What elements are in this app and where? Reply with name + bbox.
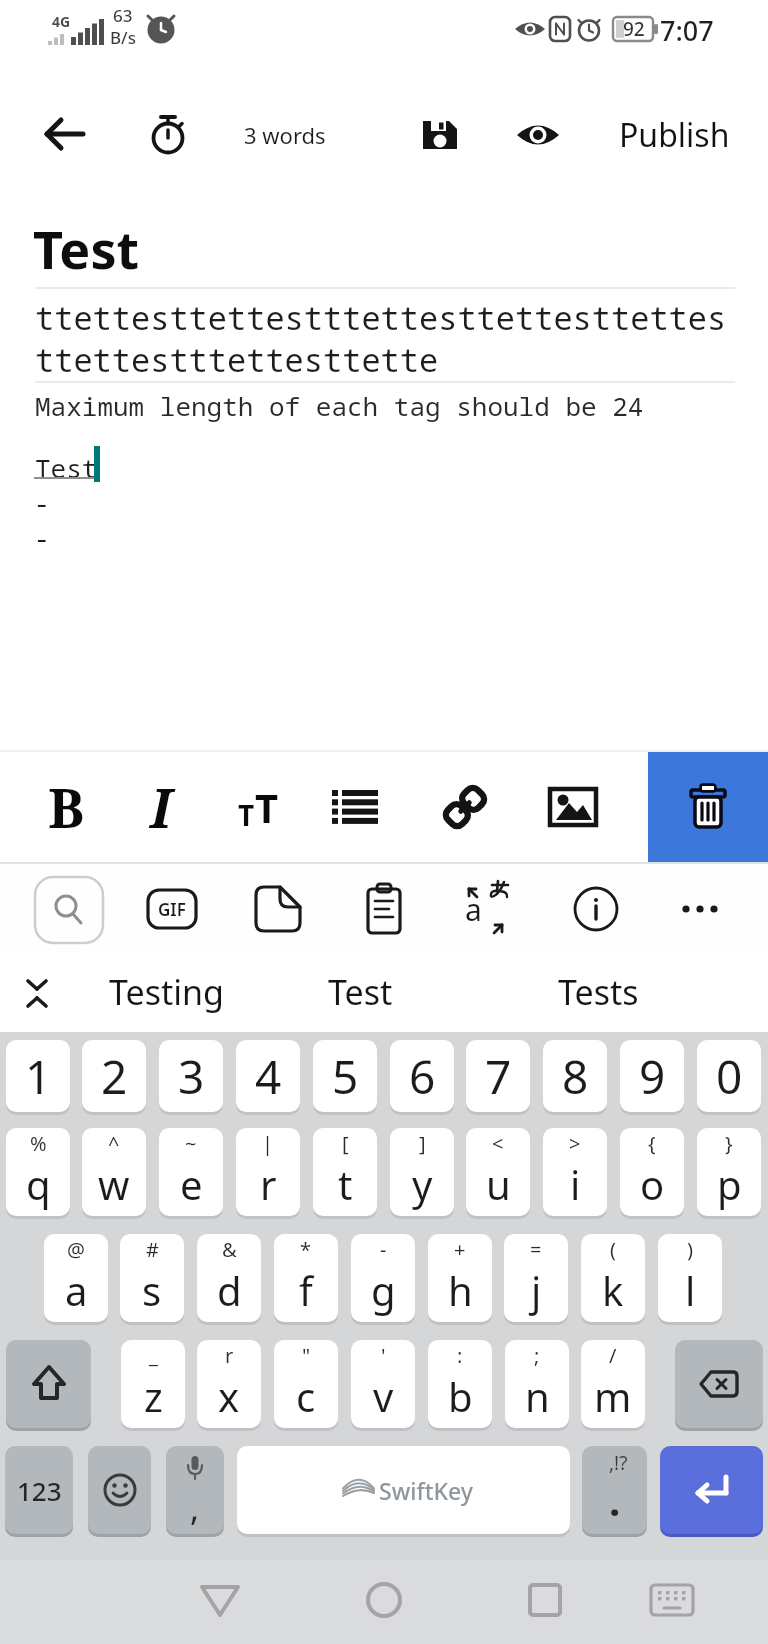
staticText: r (260, 1157, 277, 1211)
staticText: a (465, 889, 482, 930)
button[interactable]: - (351, 1234, 415, 1322)
button[interactable]: ~ (159, 1128, 223, 1216)
button[interactable]: _ (121, 1340, 185, 1428)
button[interactable] (648, 752, 768, 862)
button[interactable]: SwiftKey (237, 1446, 570, 1534)
staticText: 63 (113, 4, 133, 27)
staticText: Publish (619, 113, 730, 157)
button[interactable] (34, 876, 104, 944)
button[interactable]: ,!? (582, 1446, 647, 1534)
staticText: Testing (109, 969, 224, 1015)
button[interactable]: , (166, 1446, 224, 1534)
button[interactable] (88, 1446, 151, 1534)
button[interactable] (568, 880, 624, 938)
staticText: 9 (639, 1045, 666, 1108)
staticText: 92 (623, 16, 645, 42)
staticText: 7 (485, 1045, 512, 1108)
button[interactable]: Tests (528, 958, 668, 1026)
button[interactable]: + (428, 1234, 492, 1322)
button[interactable]: { (620, 1128, 684, 1216)
staticText: Test (328, 969, 393, 1015)
button[interactable]: * (274, 1234, 338, 1322)
button[interactable]: " (274, 1340, 338, 1428)
button[interactable]: Test (290, 958, 430, 1026)
button[interactable]: % (6, 1128, 70, 1216)
button[interactable] (315, 762, 395, 852)
staticText: * (300, 1236, 312, 1263)
button[interactable] (675, 1340, 763, 1428)
button[interactable]: I (121, 762, 201, 852)
button[interactable]: ) (658, 1234, 722, 1322)
button[interactable]: < (466, 1128, 530, 1216)
button[interactable]: = (504, 1234, 568, 1322)
button[interactable] (660, 1446, 763, 1534)
staticText: u (486, 1157, 511, 1211)
staticText: " (302, 1342, 311, 1369)
button[interactable]: # (120, 1234, 184, 1322)
button[interactable]: & (197, 1234, 261, 1322)
staticText: < (492, 1130, 504, 1157)
staticText: Test (33, 213, 140, 284)
button[interactable]: 123 (5, 1446, 73, 1534)
button[interactable]: [ (313, 1128, 377, 1216)
button[interactable]: 9 (620, 1040, 684, 1112)
button[interactable] (6, 1340, 91, 1428)
staticText: i (570, 1157, 581, 1211)
button[interactable]: Testing (86, 958, 246, 1026)
staticText: { (648, 1130, 656, 1157)
button[interactable] (250, 880, 306, 938)
button[interactable]: Publish (610, 112, 738, 158)
button[interactable]: ] (390, 1128, 454, 1216)
button[interactable] (515, 1572, 575, 1628)
staticText: j (531, 1263, 542, 1317)
button[interactable]: 8 (543, 1040, 607, 1112)
button[interactable] (356, 880, 412, 938)
staticText: T (238, 796, 255, 834)
staticText: ^ (108, 1130, 120, 1157)
button[interactable]: B (26, 762, 106, 852)
staticText: SwiftKey (379, 1475, 473, 1506)
button[interactable] (642, 1572, 702, 1628)
button[interactable]: @ (44, 1234, 108, 1322)
button[interactable]: > (543, 1128, 607, 1216)
button[interactable]: / (581, 1340, 645, 1428)
button[interactable] (12, 968, 62, 1018)
button[interactable] (533, 762, 613, 852)
staticText: 8 (562, 1045, 589, 1108)
button[interactable]: GIF (144, 880, 200, 938)
button[interactable]: 5 (313, 1040, 377, 1112)
button[interactable]: 3 (159, 1040, 223, 1112)
button[interactable]: ; (505, 1340, 569, 1428)
staticText: # (146, 1236, 159, 1263)
button[interactable]: 1 (6, 1040, 70, 1112)
staticText: + (454, 1236, 466, 1263)
button[interactable]: 2 (82, 1040, 146, 1112)
staticText: z (144, 1369, 163, 1423)
staticText: p (717, 1157, 742, 1211)
staticText: ' (381, 1342, 386, 1369)
staticText: / (609, 1342, 617, 1369)
button[interactable]: T (218, 762, 298, 852)
staticText: ,!? (609, 1450, 628, 1476)
button[interactable]: : (428, 1340, 492, 1428)
button[interactable] (40, 109, 90, 159)
button[interactable]: r (197, 1340, 261, 1428)
staticText: % (30, 1130, 47, 1157)
button[interactable]: 7 (466, 1040, 530, 1112)
button[interactable]: 0 (697, 1040, 761, 1112)
button[interactable]: } (697, 1128, 761, 1216)
button[interactable]: ' (351, 1340, 415, 1428)
button[interactable] (354, 1572, 414, 1628)
button[interactable]: 6 (390, 1040, 454, 1112)
button[interactable] (425, 762, 505, 852)
button[interactable]: | (236, 1128, 300, 1216)
button[interactable]: ( (581, 1234, 645, 1322)
button[interactable]: ^ (82, 1128, 146, 1216)
button[interactable]: a (458, 878, 518, 940)
button[interactable] (190, 1572, 250, 1628)
staticText: > (569, 1130, 581, 1157)
staticText: - (34, 485, 50, 520)
button[interactable] (672, 880, 728, 938)
button[interactable]: 4 (236, 1040, 300, 1112)
staticText: [ (342, 1130, 349, 1157)
